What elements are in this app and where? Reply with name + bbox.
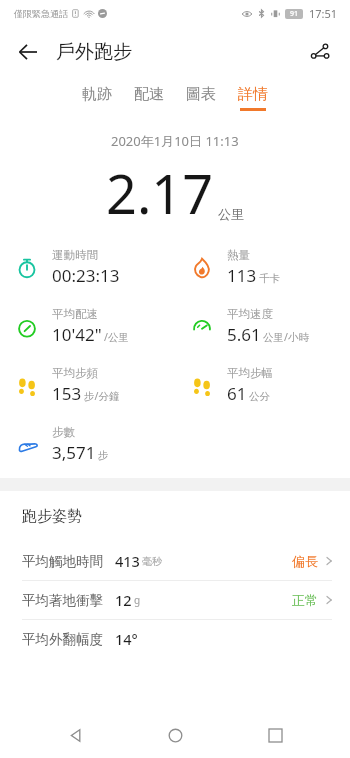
button[interactable]: 平均配速 (0, 307, 175, 346)
button[interactable]: 軌跡 (71, 85, 123, 111)
staticText: 91 (290, 9, 299, 19)
staticText: 公里/小時 (263, 330, 309, 344)
staticText: 千卡 (259, 272, 280, 285)
staticText: 毫秒 (142, 555, 162, 568)
staticText: 17:51 (309, 6, 338, 21)
staticText: 413 (115, 551, 140, 571)
staticText: 正常 (292, 592, 318, 608)
staticText: 步數 (52, 425, 75, 439)
staticText: 10'42" (52, 323, 102, 346)
staticText: g (134, 593, 141, 607)
button[interactable]: 平均步頻 (0, 366, 175, 405)
staticText: 5.61 (227, 323, 261, 346)
staticText: 平均觸地時間 (22, 553, 103, 570)
staticText: 3,571 (52, 441, 96, 464)
staticText: 2.17 (106, 156, 214, 230)
staticText: 平均配速 (52, 307, 98, 321)
button[interactable]: Back (52, 712, 100, 758)
button[interactable]: Share (300, 32, 340, 72)
staticText: 僅限緊急通話 (14, 8, 68, 19)
staticText: 平均步頻 (52, 366, 98, 380)
staticText: 平均步幅 (227, 366, 273, 380)
staticText: 步/分鐘 (84, 389, 120, 403)
staticText: 步 (98, 449, 109, 462)
button[interactable]: 平均速度 (175, 307, 350, 346)
button[interactable]: 平均觸地時間 (0, 542, 350, 580)
button[interactable]: 步數 (0, 425, 175, 464)
button[interactable]: 運動時間 (0, 248, 175, 287)
button[interactable]: 詳情 (227, 85, 279, 111)
staticText: 戶外跑步 (56, 40, 132, 64)
staticText: 詳情 (238, 85, 268, 104)
staticText: 運動時間 (52, 248, 98, 262)
staticText: 平均速度 (227, 307, 273, 321)
staticText: /公里 (104, 330, 129, 344)
staticText: 12 (115, 590, 132, 610)
button[interactable]: Recent apps (251, 712, 299, 758)
staticText: 軌跡 (82, 85, 112, 104)
staticText: 2020年1月10日 11:13 (111, 132, 239, 150)
button[interactable]: Home (151, 712, 199, 758)
staticText: 平均著地衝擊 (22, 592, 103, 609)
staticText: 平均外翻幅度 (22, 631, 103, 648)
button[interactable]: 平均外翻幅度 (0, 620, 350, 658)
button[interactable]: 平均步幅 (175, 366, 350, 405)
staticText: 113 (227, 264, 257, 287)
staticText: 14° (115, 629, 138, 649)
staticText: 61 (227, 382, 247, 405)
staticText: 153 (52, 382, 82, 405)
staticText: 配速 (134, 85, 164, 104)
button[interactable]: Back (8, 32, 48, 72)
staticText: 圖表 (186, 85, 216, 104)
staticText: 公分 (249, 390, 270, 403)
button[interactable]: 圖表 (175, 85, 227, 111)
staticText: 00:23:13 (52, 264, 120, 287)
staticText: 跑步姿勢 (22, 507, 82, 526)
button[interactable]: 熱量 (175, 248, 350, 287)
staticText: 熱量 (227, 248, 250, 262)
button[interactable]: 配速 (123, 85, 175, 111)
staticText: 偏長 (292, 553, 318, 569)
staticText: 公里 (218, 206, 244, 222)
button[interactable]: 平均著地衝擊 (0, 581, 350, 619)
